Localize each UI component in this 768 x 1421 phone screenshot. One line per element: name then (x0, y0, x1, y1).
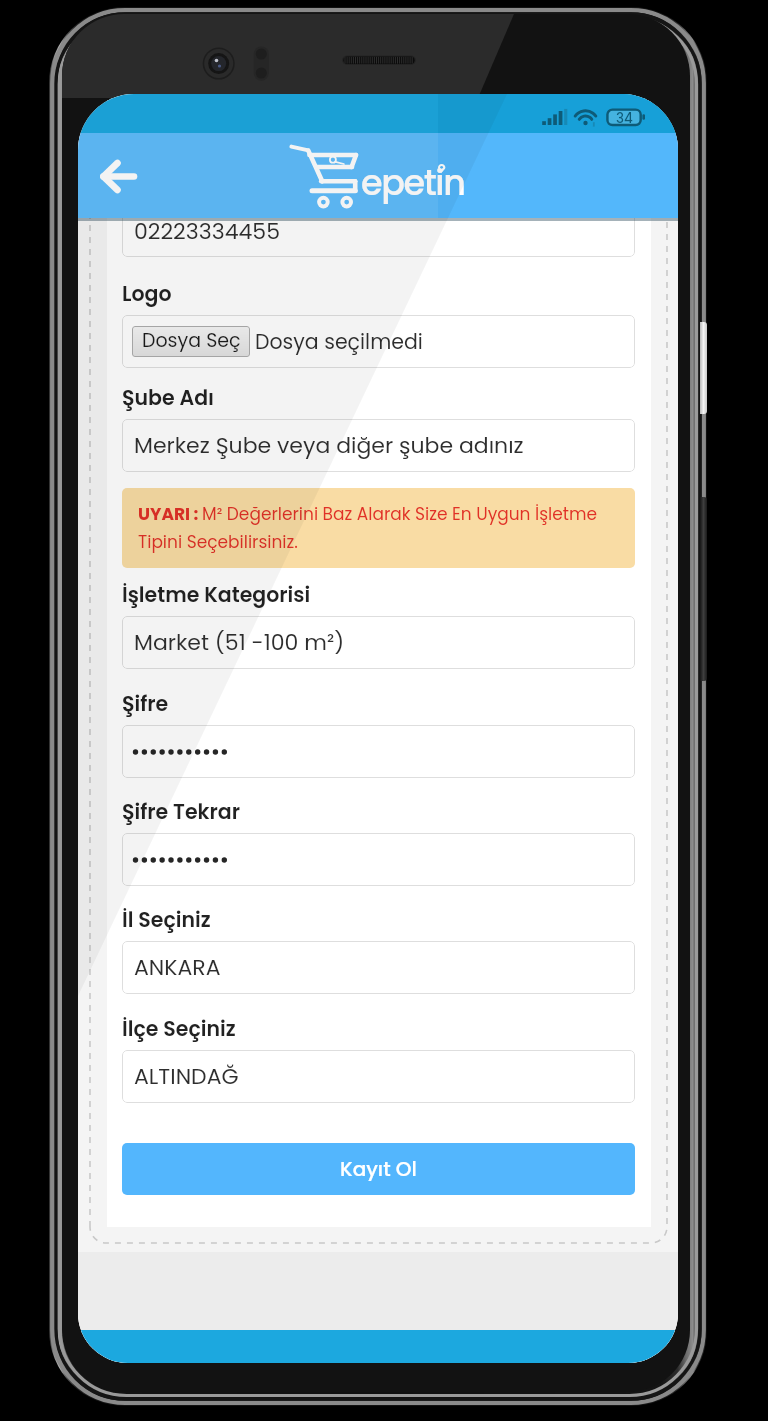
staticText: Dosya Seç (142, 327, 241, 354)
staticText: Kayıt Ol (340, 1155, 417, 1183)
staticText: Dosya seçilmedi (255, 327, 423, 356)
button[interactable]: ANKARA (122, 941, 635, 994)
staticText: İlçe Seçiniz (122, 1014, 236, 1043)
button[interactable]: Back (95, 151, 157, 211)
staticText: epetin (361, 158, 465, 207)
button[interactable]: 02223334455 (122, 205, 635, 257)
staticText: 02223334455 (134, 216, 280, 247)
staticText: Logo (122, 279, 172, 308)
button[interactable]: ALTINDAĞ (122, 1050, 635, 1103)
staticText: ALTINDAĞ (134, 1061, 239, 1092)
button[interactable] (122, 833, 635, 886)
staticText: Şifre Tekrar (122, 797, 240, 826)
staticText: ANKARA (134, 952, 221, 983)
staticText: Şube Adı (122, 383, 214, 412)
staticText: İşletme Kategorisi (122, 580, 311, 609)
button[interactable]: Dosya Seç (122, 315, 635, 368)
button[interactable] (122, 725, 635, 778)
staticText: İl Seçiniz (122, 905, 211, 934)
button[interactable]: Market (51 -100 m²) (122, 616, 635, 669)
staticText: Market (51 -100 m²) (134, 627, 345, 658)
staticText: UYARI : M² Değerlerini Baz Alarak Size E… (138, 502, 623, 553)
staticText: Merkez Şube veya diğer şube adınız (134, 430, 524, 461)
staticText: 34 (616, 109, 633, 128)
button[interactable]: Kayıt Ol (122, 1143, 635, 1195)
staticText: Şifre (122, 689, 169, 718)
button[interactable]: Merkez Şube veya diğer şube adınız (122, 419, 635, 472)
